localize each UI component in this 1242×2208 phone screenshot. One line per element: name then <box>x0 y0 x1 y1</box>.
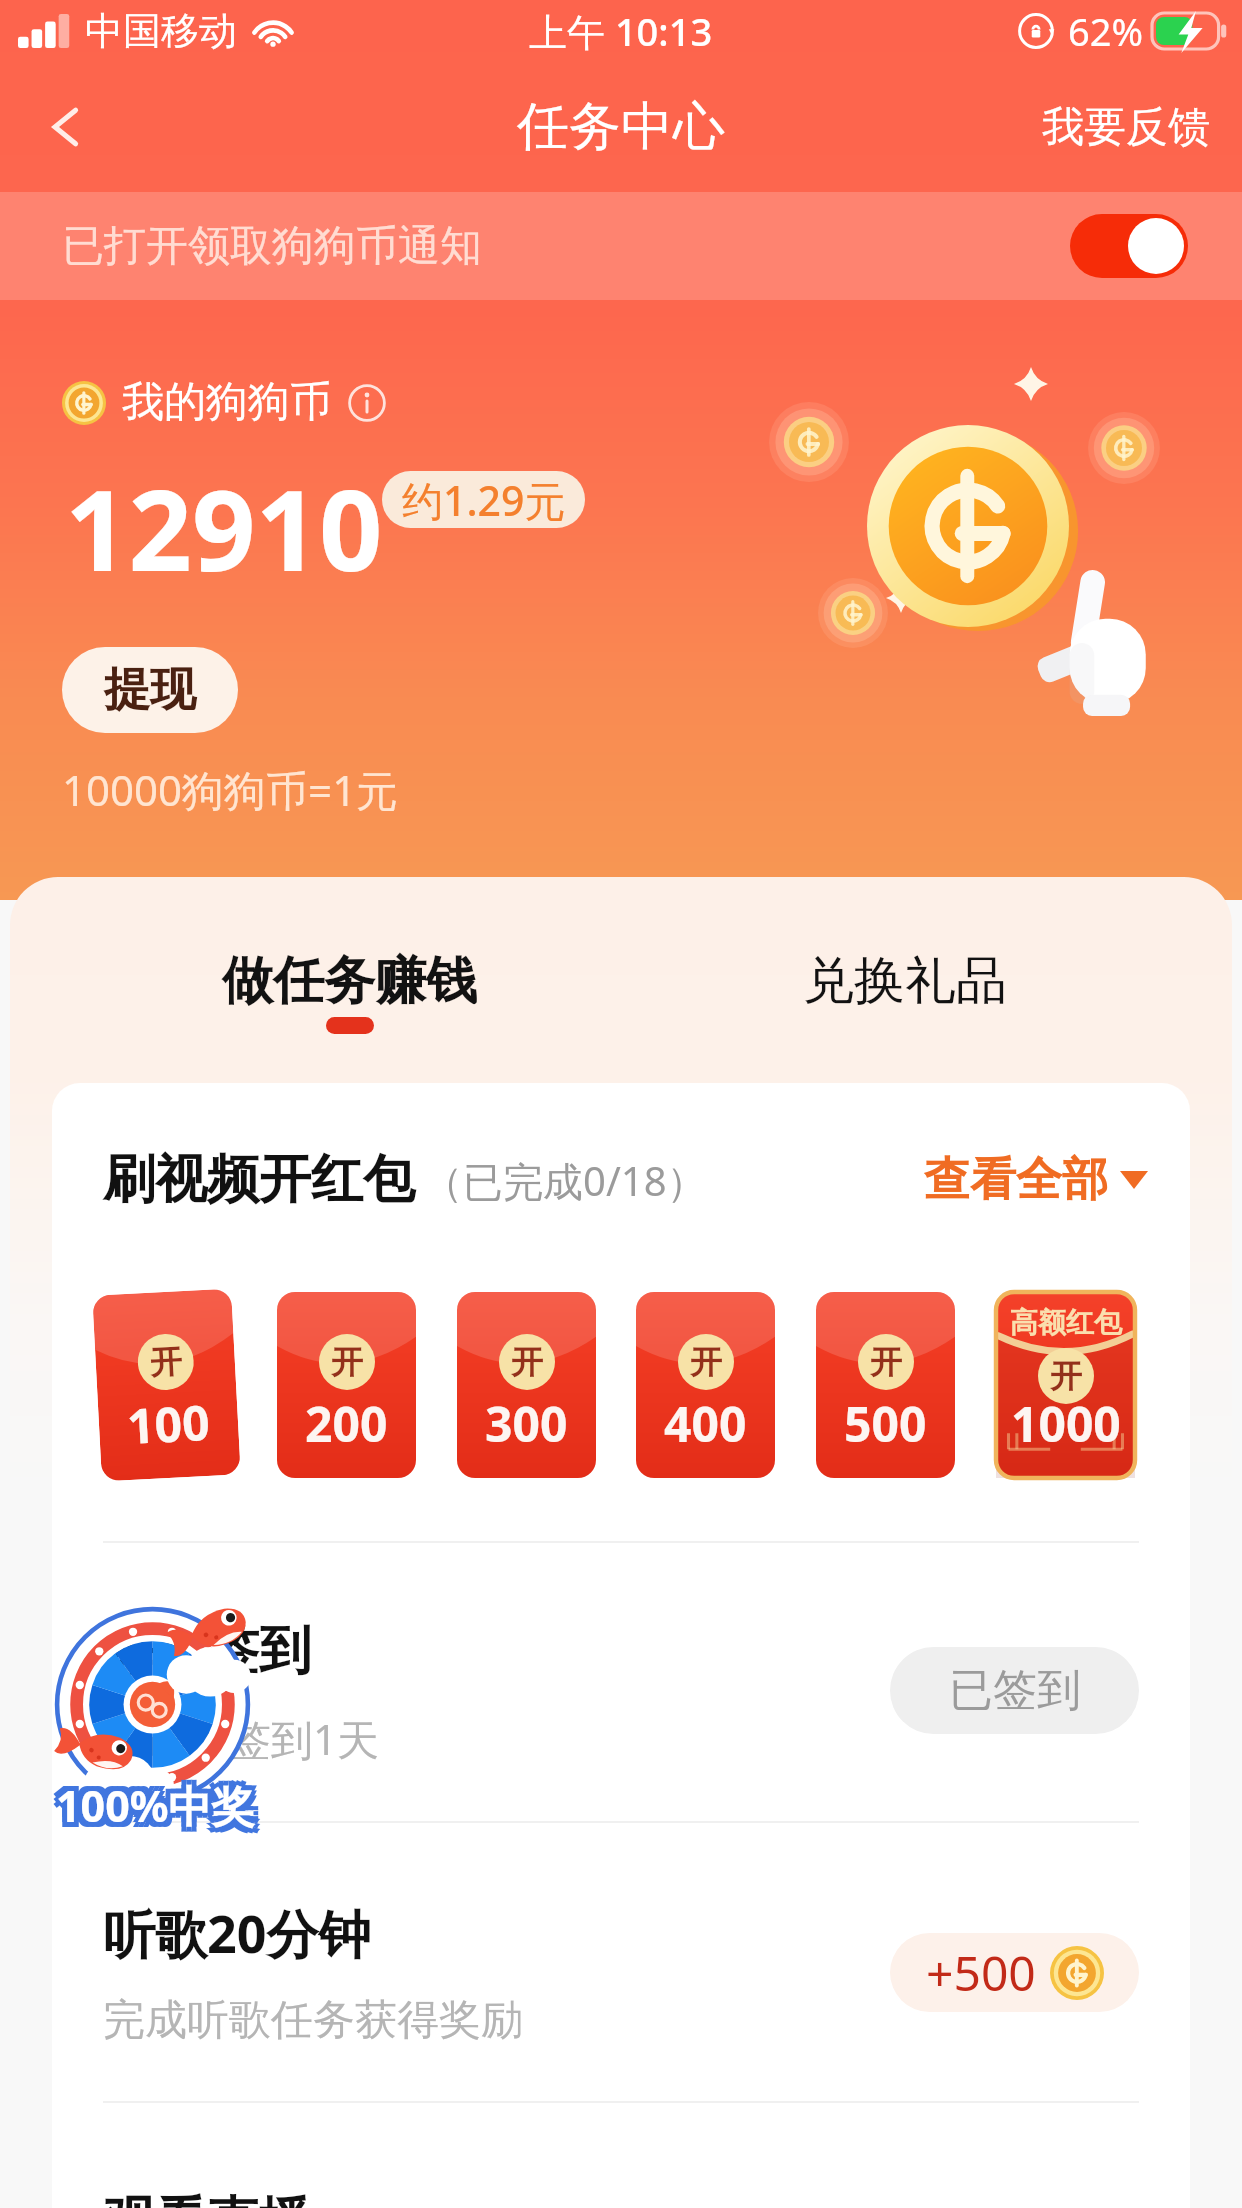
staticText: 62% <box>1068 5 1144 57</box>
staticText: 100%中奖 <box>56 1781 255 1840</box>
button[interactable]: 已签到 <box>890 1647 1139 1734</box>
staticText: +500 <box>926 1940 1036 2005</box>
staticText: 刷视频开红包 <box>103 1147 415 1213</box>
button[interactable]: Notification toggle <box>1070 214 1188 278</box>
staticText: 1000 <box>1011 1391 1121 1456</box>
button[interactable]: 开 <box>816 1292 955 1478</box>
staticText: 100%中奖 <box>51 1776 250 1835</box>
staticText: 已打开领取狗狗币通知 <box>62 220 482 273</box>
button[interactable]: 约1.29元 <box>382 471 585 528</box>
button[interactable]: 开 <box>277 1292 416 1478</box>
button[interactable]: +500 <box>890 1933 1139 2012</box>
staticText: 100%中奖 <box>61 1771 260 1830</box>
staticText: 已签到 <box>949 1663 1081 1718</box>
staticText: 约1.29元 <box>402 472 566 528</box>
button[interactable]: 提现 <box>62 647 238 733</box>
staticText: 100%中奖 <box>61 1776 260 1835</box>
staticText: （已完成0/18） <box>423 1153 707 1208</box>
staticText: 我要反馈 <box>1042 101 1210 154</box>
staticText: 完成听歌任务获得奖励 <box>103 1994 523 2047</box>
staticText: 提现 <box>104 661 196 719</box>
staticText: 高额红包 <box>1010 1305 1122 1340</box>
staticText: 上午 10:13 <box>529 5 713 57</box>
staticText: 听歌20分钟 <box>103 1897 371 1968</box>
staticText: 100%中奖 <box>56 1776 255 1835</box>
staticText: 100%中奖 <box>61 1781 260 1840</box>
button[interactable]: 兑换礼品 <box>803 949 1007 1013</box>
staticText: 100%中奖 <box>51 1781 250 1840</box>
button[interactable]: 每日签到 <box>52 1543 1190 1821</box>
button[interactable]: 我要反馈 <box>1022 85 1230 170</box>
staticText: 观看直播 <box>103 2189 311 2208</box>
staticText: 200 <box>305 1391 388 1456</box>
staticText: 300 <box>485 1391 568 1456</box>
staticText: 500 <box>844 1391 927 1456</box>
staticText: 400 <box>664 1391 747 1456</box>
staticText: 开 <box>870 1342 902 1382</box>
staticText: 开 <box>690 1342 722 1382</box>
staticText: 100 <box>125 1389 212 1458</box>
button[interactable]: 高额红包 <box>996 1292 1135 1478</box>
button[interactable]: 开 <box>92 1288 241 1481</box>
button[interactable]: 查看全部 <box>920 1147 1152 1213</box>
staticText: 100%中奖 <box>51 1771 250 1830</box>
staticText: 任务中心 <box>517 94 725 160</box>
staticText: 兑换礼品 <box>803 949 1007 1013</box>
staticText: 每日签到 <box>103 1618 311 1684</box>
staticText: 开 <box>149 1341 183 1383</box>
button[interactable]: 做任务赚钱 <box>222 949 477 1034</box>
staticText: 开 <box>1050 1356 1082 1396</box>
button[interactable]: 已打开领取狗狗币通知 <box>0 192 1242 300</box>
button[interactable]: Back <box>20 81 112 173</box>
staticText: 我的狗狗币 <box>122 376 332 429</box>
button[interactable]: 开 <box>457 1292 596 1478</box>
staticText: 开 <box>331 1342 363 1382</box>
staticText: 已连续签到1天 <box>103 1710 380 1767</box>
button[interactable]: 开 <box>636 1292 775 1478</box>
button[interactable]: 听歌20分钟 <box>52 1823 1190 2101</box>
staticText: 查看全部 <box>924 1151 1108 1209</box>
staticText: 做任务赚钱 <box>222 949 477 1013</box>
staticText: 10000狗狗币=1元 <box>62 761 399 818</box>
staticText: 100%中奖 <box>56 1771 255 1830</box>
staticText: 中国移动 <box>85 7 237 55</box>
staticText: 12910 <box>65 452 383 603</box>
staticText: 开 <box>511 1342 543 1382</box>
